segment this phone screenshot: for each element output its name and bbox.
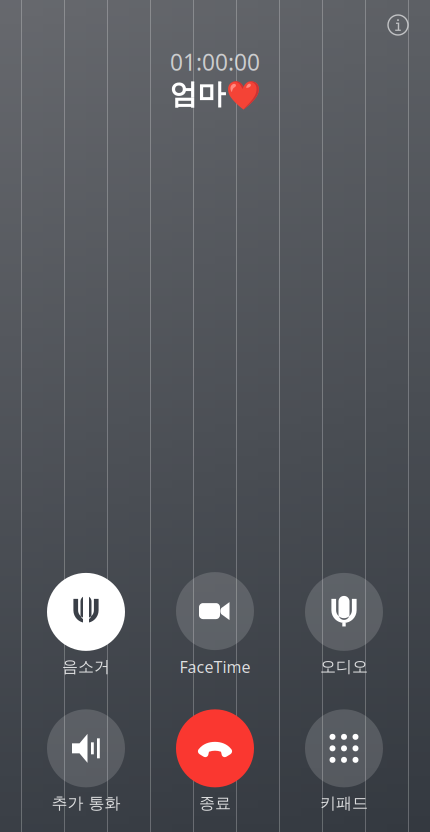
button[interactable]: 추가 통화 <box>27 709 145 813</box>
staticText: 오디오 <box>320 657 368 677</box>
button[interactable]: FaceTime <box>156 572 274 677</box>
staticText: 01:00:00 <box>170 47 260 77</box>
button[interactable]: 키패드 <box>285 709 403 813</box>
staticText: 키패드 <box>320 793 368 813</box>
staticText: 엄마❤️ <box>169 77 260 111</box>
staticText: FaceTime <box>179 656 250 677</box>
button[interactable]: 종료 <box>156 709 274 813</box>
staticText: 음소거 <box>62 657 110 677</box>
staticText: 종료 <box>199 793 231 813</box>
button[interactable]: Call details <box>376 3 420 47</box>
button[interactable]: 오디오 <box>285 573 403 677</box>
button[interactable]: 음소거 <box>27 573 145 677</box>
staticText: 추가 통화 <box>51 793 120 813</box>
